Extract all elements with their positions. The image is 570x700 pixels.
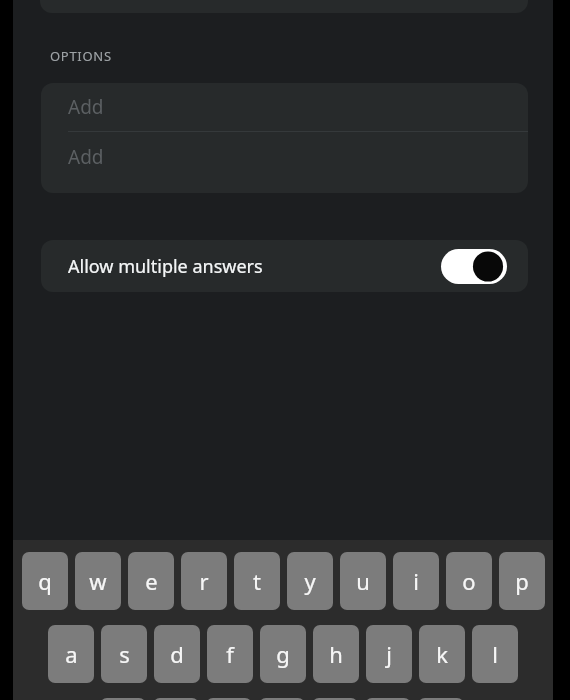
staticText: a — [65, 639, 78, 669]
staticText: s — [119, 639, 130, 669]
staticText: OPTIONS — [50, 47, 112, 65]
staticText: Add — [68, 144, 104, 170]
button[interactable]: Allow multiple answers — [441, 249, 507, 284]
button[interactable]: r — [181, 552, 227, 610]
button[interactable]: k — [419, 625, 465, 683]
button[interactable]: d — [154, 625, 200, 683]
staticText: i — [413, 566, 419, 596]
button[interactable]: g — [260, 625, 306, 683]
staticText: h — [329, 639, 343, 669]
button[interactable]: m — [418, 698, 464, 700]
staticText: t — [253, 566, 261, 596]
staticText: o — [462, 566, 476, 596]
button[interactable]: n — [365, 698, 411, 700]
staticText: Add — [68, 94, 104, 120]
button[interactable]: b — [312, 698, 358, 700]
button[interactable]: v — [259, 698, 305, 700]
button[interactable]: s — [101, 625, 147, 683]
button[interactable]: q — [22, 552, 68, 610]
staticText: r — [199, 566, 209, 596]
button[interactable]: x — [153, 698, 199, 700]
staticText: f — [226, 639, 234, 669]
staticText: l — [492, 639, 498, 669]
button[interactable]: z — [100, 698, 146, 700]
button[interactable]: Allow multiple answers — [41, 240, 528, 292]
button[interactable]: Add — [41, 132, 528, 193]
staticText: k — [436, 639, 448, 669]
staticText: j — [386, 639, 392, 669]
button[interactable]: p — [499, 552, 545, 610]
staticText: u — [356, 566, 370, 596]
staticText: q — [38, 566, 52, 596]
staticText: Allow multiple answers — [68, 254, 263, 279]
button[interactable]: a — [48, 625, 94, 683]
button[interactable]: c — [206, 698, 252, 700]
staticText: y — [304, 566, 316, 596]
staticText: p — [515, 566, 529, 596]
button[interactable]: t — [234, 552, 280, 610]
button[interactable]: l — [472, 625, 518, 683]
staticText: e — [145, 566, 158, 596]
button[interactable]: w — [75, 552, 121, 610]
staticText: g — [276, 639, 290, 669]
button[interactable]: Add — [41, 83, 528, 131]
button[interactable]: o — [446, 552, 492, 610]
staticText: w — [89, 566, 107, 596]
staticText: d — [170, 639, 184, 669]
button[interactable]: f — [207, 625, 253, 683]
button[interactable]: j — [366, 625, 412, 683]
button[interactable]: h — [313, 625, 359, 683]
button[interactable]: e — [128, 552, 174, 610]
button[interactable]: u — [340, 552, 386, 610]
button[interactable]: y — [287, 552, 333, 610]
button[interactable]: i — [393, 552, 439, 610]
